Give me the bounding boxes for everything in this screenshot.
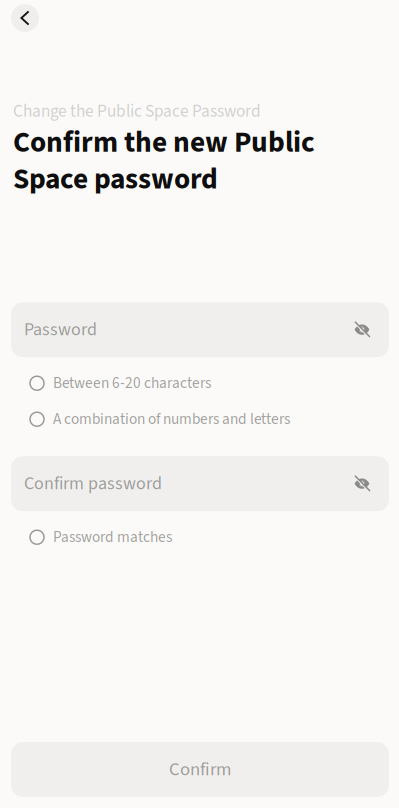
staticText: Password (24, 317, 97, 342)
button[interactable]: Show password (335, 302, 389, 357)
staticText: Confirm the new Public (13, 122, 315, 163)
staticText: Between 6-20 characters (53, 372, 211, 394)
button[interactable]: Show password (335, 456, 389, 511)
button[interactable]: Password (11, 302, 389, 357)
button[interactable]: Confirm password (11, 456, 389, 511)
staticText: Confirm (169, 756, 231, 783)
staticText: A combination of numbers and letters (53, 408, 290, 430)
button[interactable]: Back (11, 4, 39, 32)
staticText: Confirm password (24, 471, 162, 496)
staticText: Password matches (53, 526, 172, 548)
staticText: Change the Public Space Password (13, 99, 261, 124)
button[interactable]: Confirm (11, 742, 389, 797)
staticText: Space password (13, 158, 218, 200)
